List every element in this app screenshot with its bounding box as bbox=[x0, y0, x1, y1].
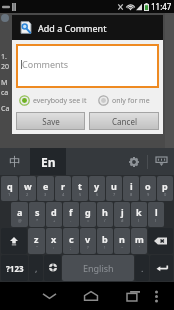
button[interactable]: l bbox=[148, 202, 164, 227]
staticText: 8 bbox=[130, 192, 133, 197]
button[interactable]: b bbox=[97, 228, 113, 254]
staticText: w bbox=[24, 180, 32, 192]
button[interactable]: o bbox=[140, 176, 156, 201]
button[interactable]: Recent apps bbox=[120, 282, 146, 310]
button[interactable]: h bbox=[97, 202, 113, 227]
button[interactable]: Shift bbox=[1, 228, 27, 254]
button[interactable]: Cancel bbox=[89, 112, 159, 130]
staticText: d bbox=[51, 206, 57, 218]
staticText: s bbox=[35, 206, 40, 218]
button[interactable]: u bbox=[106, 176, 122, 201]
staticText: 11:47 bbox=[151, 1, 172, 12]
button[interactable]: More options bbox=[146, 282, 167, 310]
button[interactable]: Enter bbox=[150, 255, 173, 281]
staticText: En bbox=[41, 154, 56, 170]
button[interactable]: r bbox=[55, 176, 71, 201]
staticText: 1. bbox=[1, 52, 7, 62]
staticText: + bbox=[53, 218, 56, 223]
staticText: Cancel bbox=[112, 116, 137, 127]
button[interactable]: Settings bbox=[121, 148, 147, 175]
staticText: k bbox=[136, 206, 142, 218]
staticText: g bbox=[85, 206, 91, 218]
button[interactable]: m bbox=[131, 228, 147, 254]
staticText: u bbox=[111, 180, 117, 192]
button[interactable]: a bbox=[11, 202, 28, 227]
staticText: . bbox=[141, 262, 144, 274]
button[interactable]: Home bbox=[78, 282, 104, 310]
staticText: t bbox=[78, 180, 82, 192]
staticText: 7 bbox=[113, 192, 116, 197]
staticText: ! bbox=[104, 245, 106, 250]
staticText: 4 bbox=[62, 192, 65, 197]
staticText: - bbox=[70, 218, 72, 223]
staticText: # bbox=[121, 218, 124, 223]
staticText: ) bbox=[155, 218, 157, 223]
staticText: Add a Comment bbox=[38, 22, 107, 34]
staticText: 2 bbox=[26, 192, 29, 197]
button[interactable]: Backspace bbox=[148, 228, 173, 254]
button[interactable]: Chinese input method bbox=[0, 148, 30, 175]
staticText: 6 bbox=[96, 192, 99, 197]
button[interactable]: Save bbox=[16, 112, 85, 130]
staticText: f bbox=[69, 206, 73, 218]
button[interactable]: k bbox=[131, 202, 147, 227]
button[interactable]: i bbox=[123, 176, 139, 201]
button[interactable]: s bbox=[29, 202, 45, 227]
staticText: l bbox=[155, 206, 158, 218]
button[interactable]: y bbox=[89, 176, 105, 201]
staticText: ca bbox=[1, 88, 9, 98]
staticText: o bbox=[145, 180, 151, 192]
staticText: ; bbox=[70, 245, 72, 250]
staticText: y bbox=[94, 180, 100, 192]
button[interactable]: Comments bbox=[16, 44, 159, 88]
staticText: ' bbox=[139, 245, 140, 250]
staticText: r bbox=[61, 180, 66, 192]
button[interactable]: j bbox=[114, 202, 130, 227]
staticText: 中 bbox=[9, 154, 21, 169]
button[interactable]: e bbox=[37, 176, 54, 201]
staticText: ( bbox=[138, 218, 140, 223]
staticText: English bbox=[83, 262, 114, 274]
button[interactable]: , bbox=[29, 255, 43, 281]
staticText: 5 bbox=[79, 192, 82, 197]
button[interactable]: w bbox=[19, 176, 36, 201]
button[interactable]: English bbox=[62, 255, 134, 281]
button[interactable]: n bbox=[114, 228, 130, 254]
staticText: 1 bbox=[8, 192, 11, 197]
button[interactable]: Hide keyboard bbox=[148, 148, 174, 175]
staticText: 9 bbox=[147, 192, 150, 197]
staticText: ~ bbox=[121, 245, 124, 250]
button[interactable]: English input method bbox=[30, 148, 66, 175]
staticText: 3 bbox=[44, 192, 47, 197]
button[interactable]: v bbox=[80, 228, 96, 254]
button[interactable]: x bbox=[46, 228, 62, 254]
staticText: x bbox=[51, 233, 57, 245]
button[interactable]: Back bbox=[36, 282, 62, 310]
button[interactable]: z bbox=[28, 228, 45, 254]
staticText: ? bbox=[87, 245, 89, 250]
button[interactable]: . bbox=[135, 255, 149, 281]
button[interactable]: c bbox=[63, 228, 79, 254]
staticText: Ca bbox=[1, 104, 10, 114]
staticText: everybody see it bbox=[33, 96, 87, 106]
button[interactable]: t bbox=[72, 176, 88, 201]
staticText: " bbox=[36, 245, 38, 250]
button[interactable]: p bbox=[157, 176, 173, 201]
staticText: z bbox=[34, 233, 39, 245]
staticText: * bbox=[36, 218, 39, 223]
button[interactable]: everybody see it bbox=[18, 95, 88, 106]
staticText: j bbox=[121, 206, 124, 218]
button[interactable]: f bbox=[63, 202, 79, 227]
button[interactable]: only for me bbox=[97, 95, 151, 106]
button[interactable]: ?123 bbox=[1, 255, 28, 281]
staticText: : bbox=[53, 245, 55, 250]
button[interactable]: g bbox=[80, 202, 96, 227]
button[interactable]: d bbox=[46, 202, 62, 227]
staticText: n bbox=[119, 233, 125, 245]
staticText: M bbox=[1, 78, 8, 88]
staticText: , bbox=[35, 262, 38, 274]
staticText: / bbox=[104, 218, 106, 223]
button[interactable]: Change language bbox=[44, 255, 61, 281]
staticText: Comments bbox=[22, 58, 69, 70]
button[interactable]: q bbox=[1, 176, 18, 201]
